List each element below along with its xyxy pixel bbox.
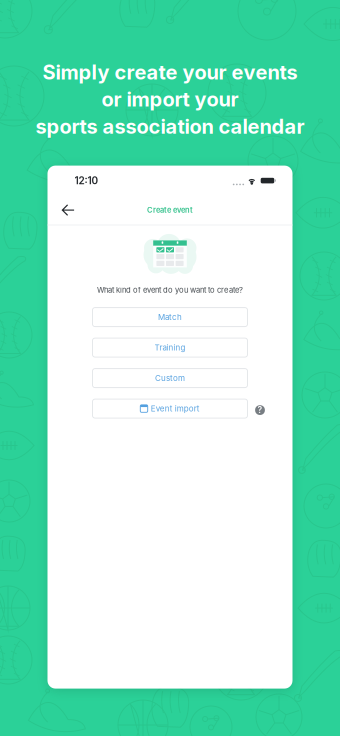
staticText: Simply create your events — [42, 60, 297, 84]
staticText: or import your — [101, 87, 238, 111]
staticText: What kind of event do you want to create… — [97, 285, 243, 295]
staticText: sports association calendar — [35, 114, 304, 139]
staticText: ? — [257, 405, 262, 415]
staticText: Event import — [151, 404, 200, 413]
staticText: Create event — [147, 206, 193, 215]
button[interactable]: Training — [92, 338, 247, 357]
staticText: 12:10 — [74, 174, 98, 187]
staticText: Match — [158, 312, 182, 322]
staticText: Custom — [155, 373, 185, 383]
button[interactable]: Match — [92, 308, 247, 327]
button[interactable]: Help — [255, 405, 265, 415]
button[interactable]: Custom — [92, 369, 247, 388]
staticText: Training — [154, 343, 185, 352]
button[interactable]: Event import — [92, 399, 247, 418]
button[interactable]: Back — [58, 199, 77, 221]
